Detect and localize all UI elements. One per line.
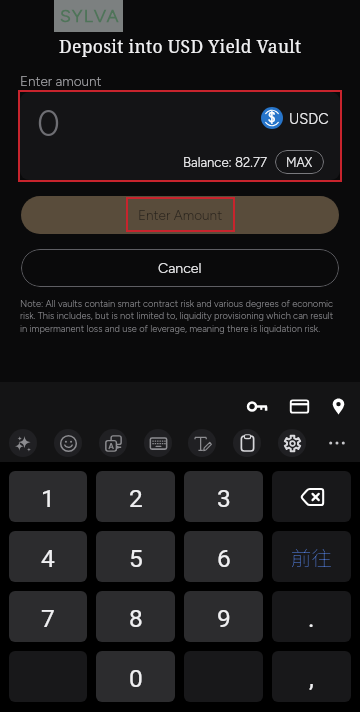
button[interactable]: 6 xyxy=(184,531,263,582)
staticText: Enter amount xyxy=(20,73,102,89)
staticText: MAX xyxy=(286,155,313,170)
staticText: 6 xyxy=(217,544,231,573)
staticText: 1 xyxy=(41,484,55,513)
button[interactable]: 3 xyxy=(184,471,263,522)
button[interactable]: Emoji xyxy=(54,429,82,457)
button[interactable]: Enter Amount xyxy=(21,196,339,234)
button[interactable]: 0 xyxy=(96,651,175,702)
button[interactable]: Passwords xyxy=(241,390,273,422)
button[interactable]: 0 xyxy=(20,92,340,180)
staticText: USDC xyxy=(289,110,329,127)
button[interactable]: Cancel xyxy=(21,249,339,287)
button[interactable]: Addresses xyxy=(322,390,354,422)
button[interactable]: Clipboard xyxy=(233,429,261,457)
button[interactable]: MAX xyxy=(275,150,324,174)
staticText: . xyxy=(308,604,315,633)
staticText: SYLVA xyxy=(60,5,120,26)
button[interactable]: , xyxy=(272,651,351,702)
staticText: 0 xyxy=(129,664,143,693)
staticText: Cancel xyxy=(158,260,202,277)
button[interactable]: 2 xyxy=(96,471,175,522)
button[interactable]: . xyxy=(272,591,351,642)
button[interactable]: Payment methods xyxy=(283,390,315,422)
button[interactable]: Backspace xyxy=(272,471,351,522)
other: Backspace xyxy=(299,484,325,510)
staticText: 3 xyxy=(217,484,231,513)
button[interactable]: Keyboard layout xyxy=(144,429,172,457)
staticText: Deposit into USD Yield Vault xyxy=(59,34,302,58)
staticText: Enter Amount xyxy=(138,207,223,223)
button[interactable]: 4 xyxy=(9,531,87,582)
button[interactable]: More options xyxy=(323,429,351,457)
button[interactable]: Handwriting xyxy=(188,429,216,457)
staticText: $ xyxy=(268,110,276,126)
button[interactable]: Assist xyxy=(9,429,37,457)
staticText: 9 xyxy=(217,604,231,633)
button[interactable]: 1 xyxy=(9,471,87,522)
staticText: 5 xyxy=(129,544,143,573)
staticText: 前往 xyxy=(291,542,332,572)
button[interactable]: 5 xyxy=(96,531,175,582)
staticText: 2 xyxy=(129,484,143,513)
staticText: Balance: 82.77 xyxy=(183,154,267,170)
staticText: 7 xyxy=(41,604,55,633)
button[interactable]: 7 xyxy=(9,591,87,642)
button[interactable]: 前往 xyxy=(272,531,351,582)
button[interactable]: Settings xyxy=(278,429,306,457)
staticText: 8 xyxy=(129,604,143,633)
button[interactable]: 9 xyxy=(184,591,263,642)
button[interactable]: Translate xyxy=(99,429,127,457)
staticText: Note: All vaults contain smart contract … xyxy=(20,298,338,334)
staticText: 0 xyxy=(37,102,60,145)
button[interactable]: 8 xyxy=(96,591,175,642)
staticText: , xyxy=(309,664,314,693)
staticText: 4 xyxy=(41,544,55,573)
